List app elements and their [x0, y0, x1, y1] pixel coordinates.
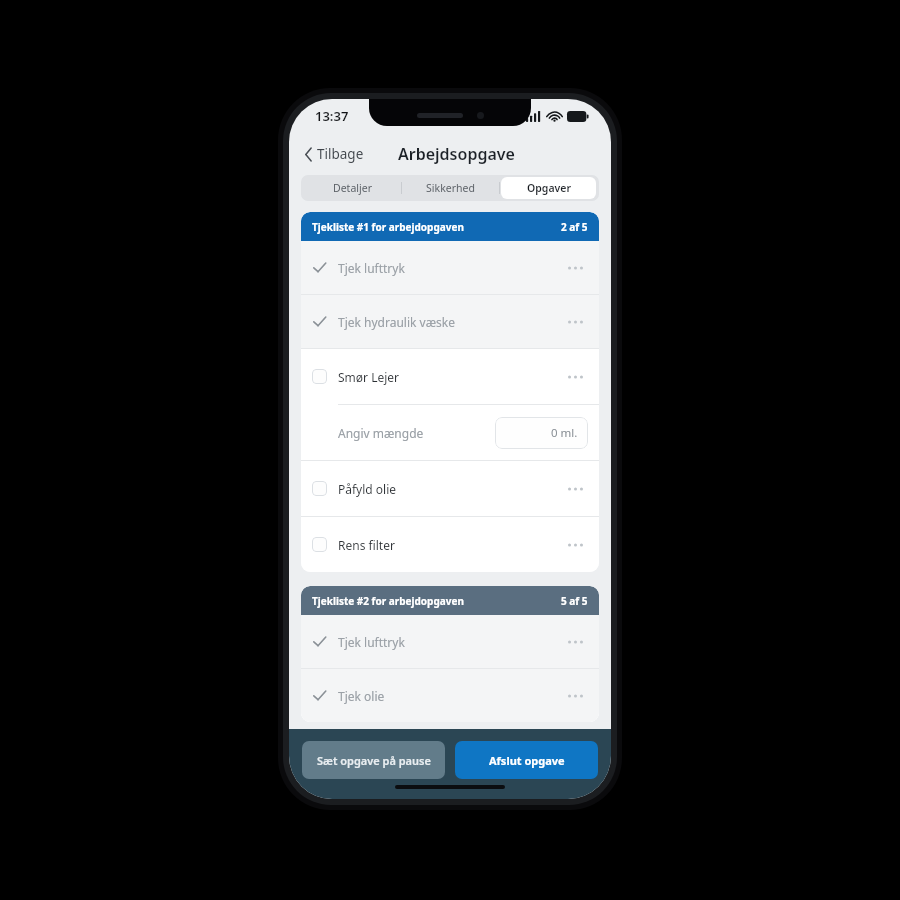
staticText: Tilbage — [317, 145, 364, 163]
button[interactable]: Smør Lejer — [301, 349, 599, 404]
staticText: 0 ml. — [551, 425, 578, 441]
button[interactable]: Tjek lufttryk — [301, 241, 599, 294]
button[interactable]: Påfyld olie — [301, 461, 599, 516]
button[interactable]: Detaljer — [304, 177, 400, 199]
button[interactable]: Angiv mængde — [301, 405, 599, 460]
button[interactable]: Flere valgmuligheder — [562, 476, 588, 502]
staticText: Smør Lejer — [338, 369, 400, 385]
staticText: 5 af 5 — [561, 594, 588, 608]
button[interactable]: Rens filter — [301, 517, 599, 572]
staticText: Angiv mængde — [338, 425, 424, 441]
staticText: Arbejdsopgave — [398, 143, 515, 165]
staticText: Rens filter — [338, 537, 395, 553]
staticText: 2 af 5 — [561, 220, 588, 234]
staticText: Detaljer — [333, 181, 372, 195]
button[interactable]: Flere valgmuligheder — [562, 309, 588, 335]
button[interactable]: Tjekliste #1 for arbejdopgaven — [301, 212, 599, 241]
button[interactable]: 0 ml. — [495, 417, 588, 449]
staticText: Tjek olie — [338, 688, 385, 704]
button[interactable]: Afslut opgave — [455, 741, 598, 779]
staticText: Sæt opgave på pause — [317, 753, 431, 768]
staticText: Tjek hydraulik væske — [338, 314, 455, 330]
staticText: Sikkerhed — [426, 181, 475, 195]
button[interactable]: Sæt opgave på pause — [302, 741, 445, 779]
staticText: Tjekliste #2 for arbejdopgaven — [312, 594, 464, 608]
button[interactable]: Tjek hydraulik væske — [301, 295, 599, 348]
staticText: Tjek lufttryk — [338, 634, 405, 650]
staticText: 13:37 — [315, 107, 349, 125]
button[interactable]: Tjek lufttryk — [301, 615, 599, 668]
button[interactable]: Flere valgmuligheder — [562, 364, 588, 390]
staticText: Tjek lufttryk — [338, 260, 405, 276]
button[interactable]: Tjekliste #2 for arbejdopgaven — [301, 586, 599, 615]
staticText: Opgaver — [527, 181, 571, 195]
staticText: Påfyld olie — [338, 481, 397, 497]
staticText: Afslut opgave — [489, 753, 565, 768]
button[interactable]: Flere valgmuligheder — [562, 683, 588, 709]
button[interactable]: Tjek olie — [301, 669, 599, 722]
button[interactable]: Flere valgmuligheder — [562, 255, 588, 281]
staticText: Tjekliste #1 for arbejdopgaven — [312, 220, 464, 234]
button[interactable]: Sikkerhed — [403, 177, 498, 199]
button[interactable]: Flere valgmuligheder — [562, 532, 588, 558]
button[interactable]: Tilbage — [299, 141, 370, 167]
button[interactable]: Flere valgmuligheder — [562, 629, 588, 655]
button[interactable]: Opgaver — [501, 177, 596, 199]
